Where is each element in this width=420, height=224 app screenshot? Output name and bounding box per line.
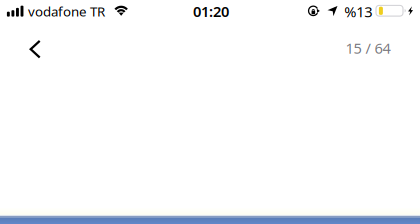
staticText: vodafone TR [28, 2, 105, 20]
staticText: %13 [344, 2, 372, 21]
staticText: 15 / 64 [345, 38, 390, 58]
button[interactable]: Back [16, 27, 60, 71]
staticText: 01:20 [193, 1, 229, 21]
